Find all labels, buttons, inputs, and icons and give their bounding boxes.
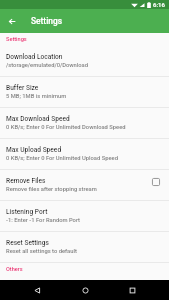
button[interactable]: Buffer Size — [0, 77, 169, 108]
staticText: Buffer Size — [6, 84, 39, 92]
button[interactable]: Recents — [122, 280, 142, 300]
button[interactable]: Download Location — [0, 46, 169, 77]
button[interactable]: Back — [0, 9, 23, 33]
staticText: 0 KB/s; Enter 0 For Unlimited Upload Spe… — [6, 155, 118, 162]
staticText: /storage/emulated/0/Download — [6, 62, 88, 69]
staticText: Settings — [6, 36, 27, 43]
staticText: Max Upload Speed — [6, 146, 62, 154]
staticText: Max Download Speed — [6, 115, 70, 123]
staticText: Reset all settings to default — [6, 248, 77, 255]
button[interactable]: Remove Files — [0, 170, 169, 201]
staticText: 6:16 — [153, 1, 165, 8]
staticText: 5 MB; 1MB is minimum — [6, 93, 67, 100]
staticText: Remove Files — [6, 177, 46, 185]
button[interactable]: Reset Settings — [0, 232, 169, 263]
button[interactable]: Home — [75, 280, 95, 300]
staticText: 0 KB/s; Enter 0 For Unlimited Download S… — [6, 124, 126, 131]
button[interactable]: Listening Port — [0, 201, 169, 232]
button[interactable]: Max Upload Speed — [0, 139, 169, 170]
staticText: Reset Settings — [6, 239, 49, 247]
staticText: Listening Port — [6, 208, 48, 216]
staticText: Remove files after stopping stream — [6, 186, 97, 193]
staticText: Others — [6, 266, 23, 273]
button[interactable]: Max Download Speed — [0, 108, 169, 139]
staticText: Settings — [31, 16, 63, 26]
staticText: -1: Enter -1 For Random Port — [6, 217, 80, 224]
staticText: Download Location — [6, 53, 63, 61]
button[interactable]: Back — [27, 280, 47, 300]
